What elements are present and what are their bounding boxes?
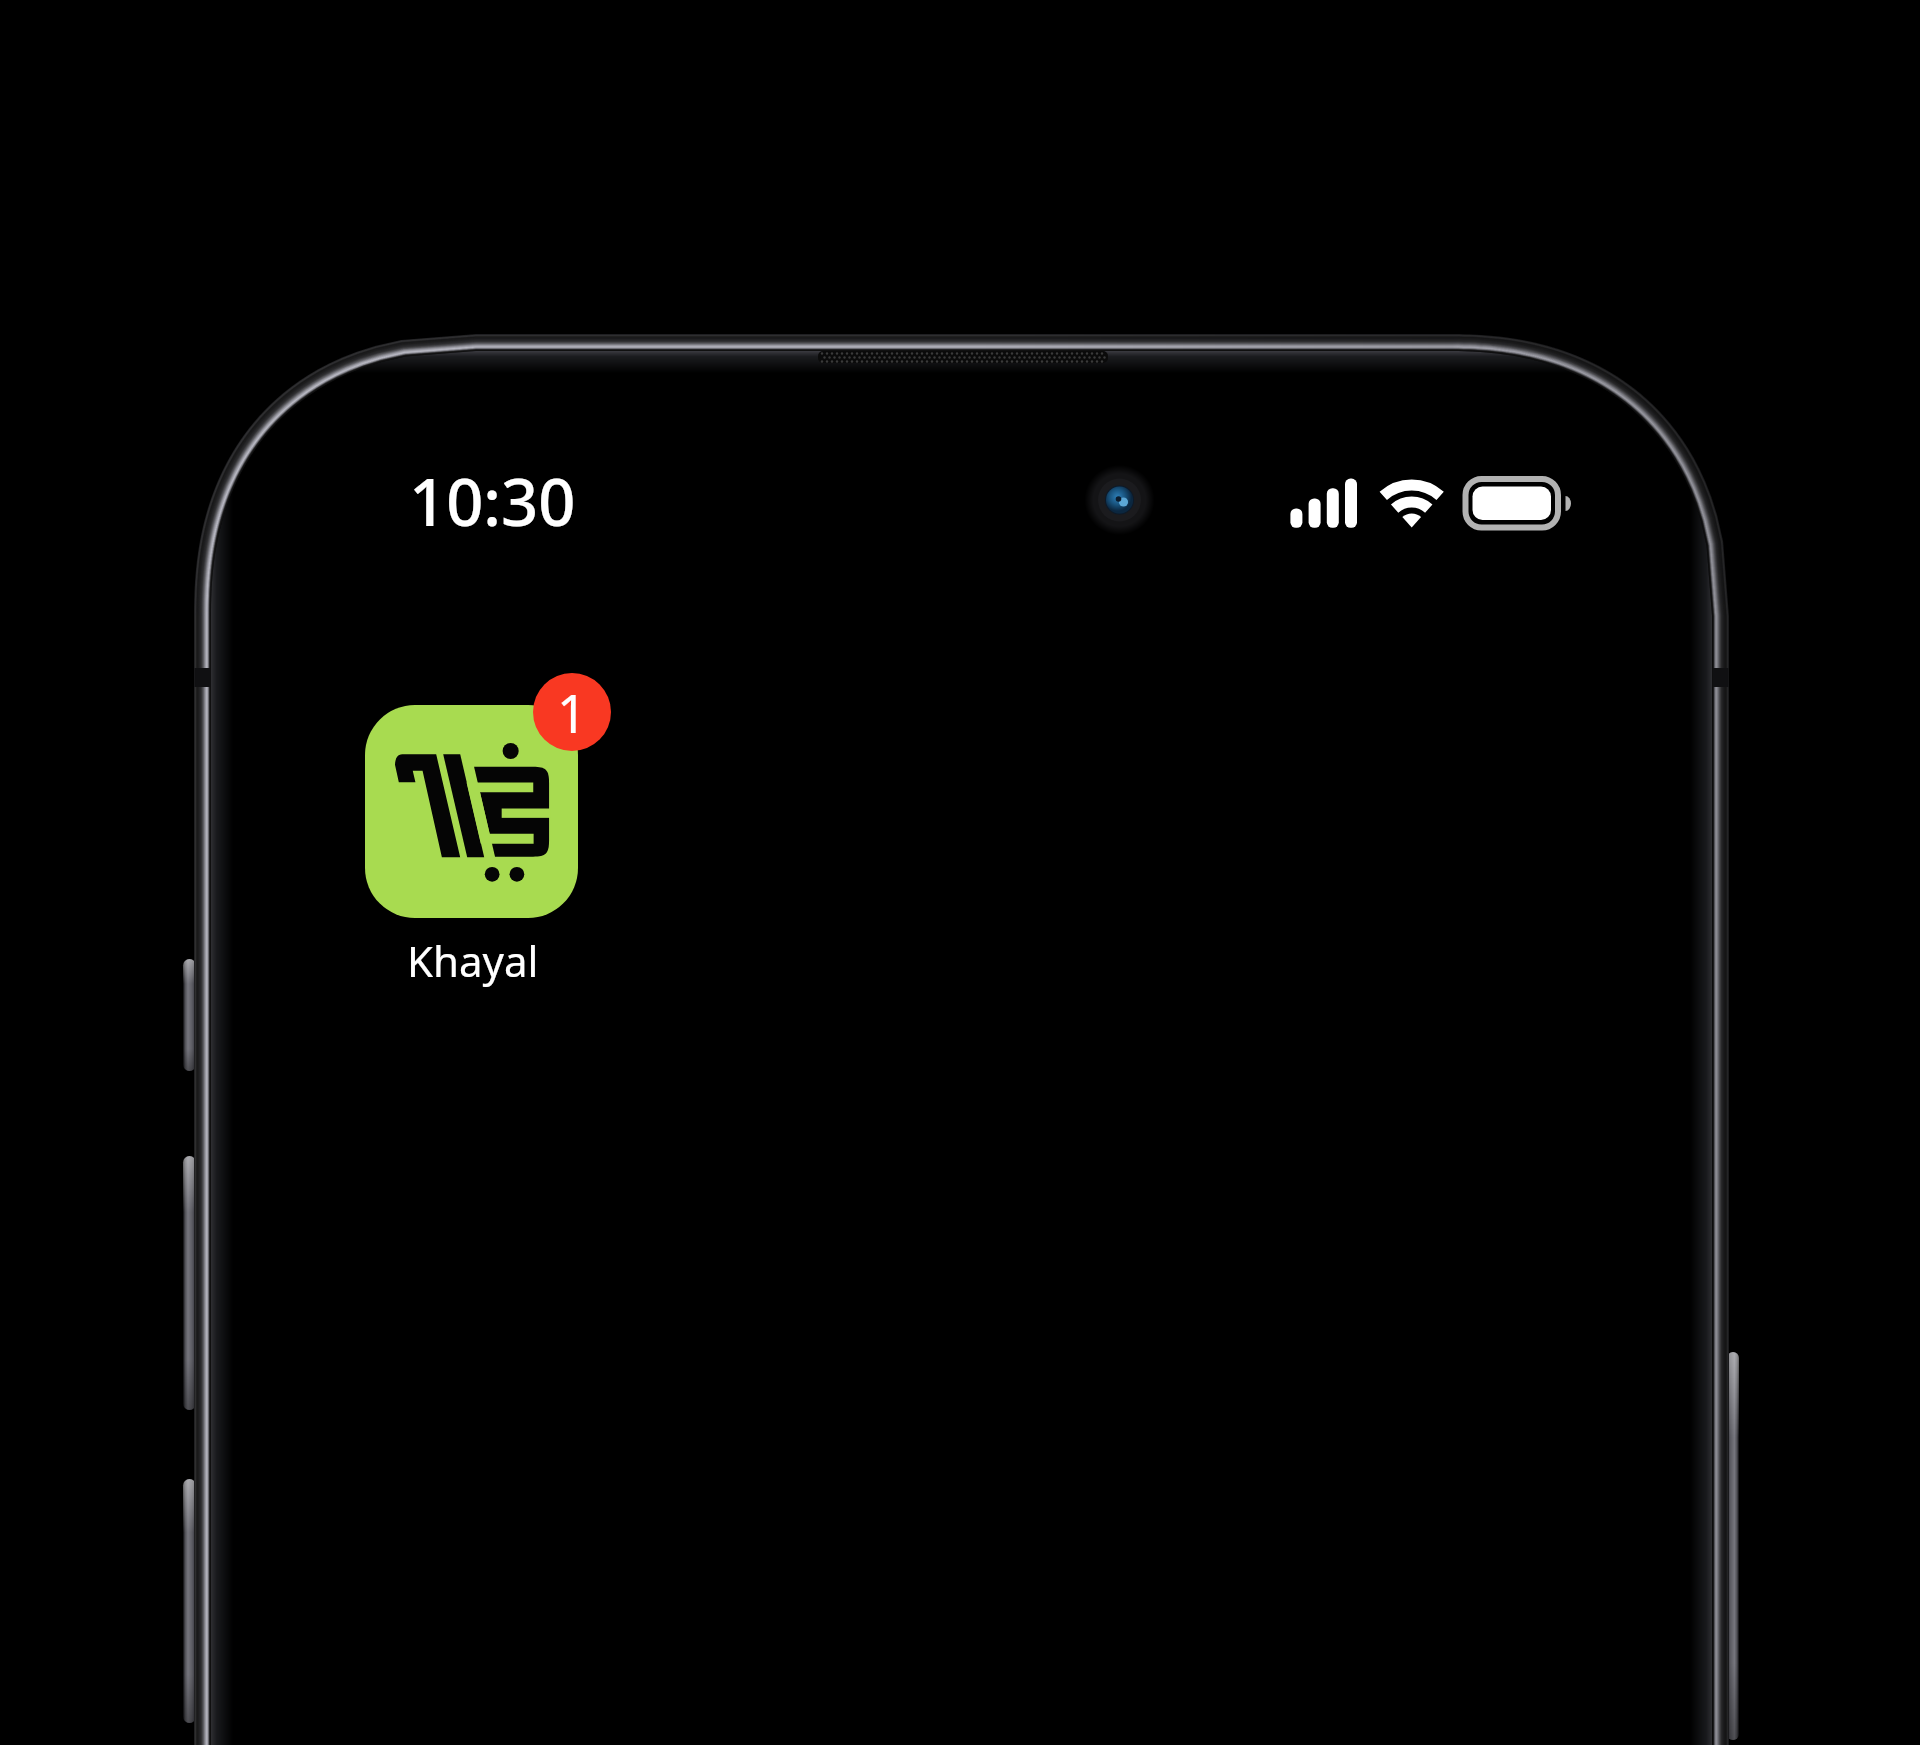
button[interactable]: Khayal app: [365, 705, 578, 918]
staticText: 10:30: [409, 457, 576, 546]
staticText: 1: [557, 677, 587, 748]
staticText: Khayal: [407, 932, 539, 989]
